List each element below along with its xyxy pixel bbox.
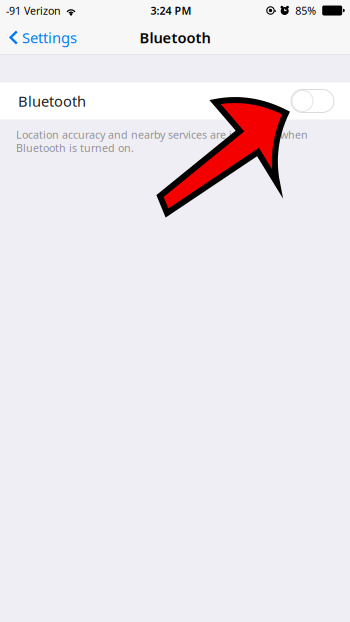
staticText: -91 Verizon [6,3,61,18]
staticText: Bluetooth [139,28,210,47]
staticText: Settings [22,28,77,47]
staticText: 85% [295,3,316,18]
staticText: 3:24 PM [151,3,192,18]
staticText: Bluetooth [18,91,86,111]
button[interactable]: Settings [0,23,83,52]
staticText: Location accuracy and nearby services ar… [16,127,308,142]
button[interactable]: Bluetooth [0,82,350,119]
staticText: Bluetooth is turned on. [16,141,134,155]
